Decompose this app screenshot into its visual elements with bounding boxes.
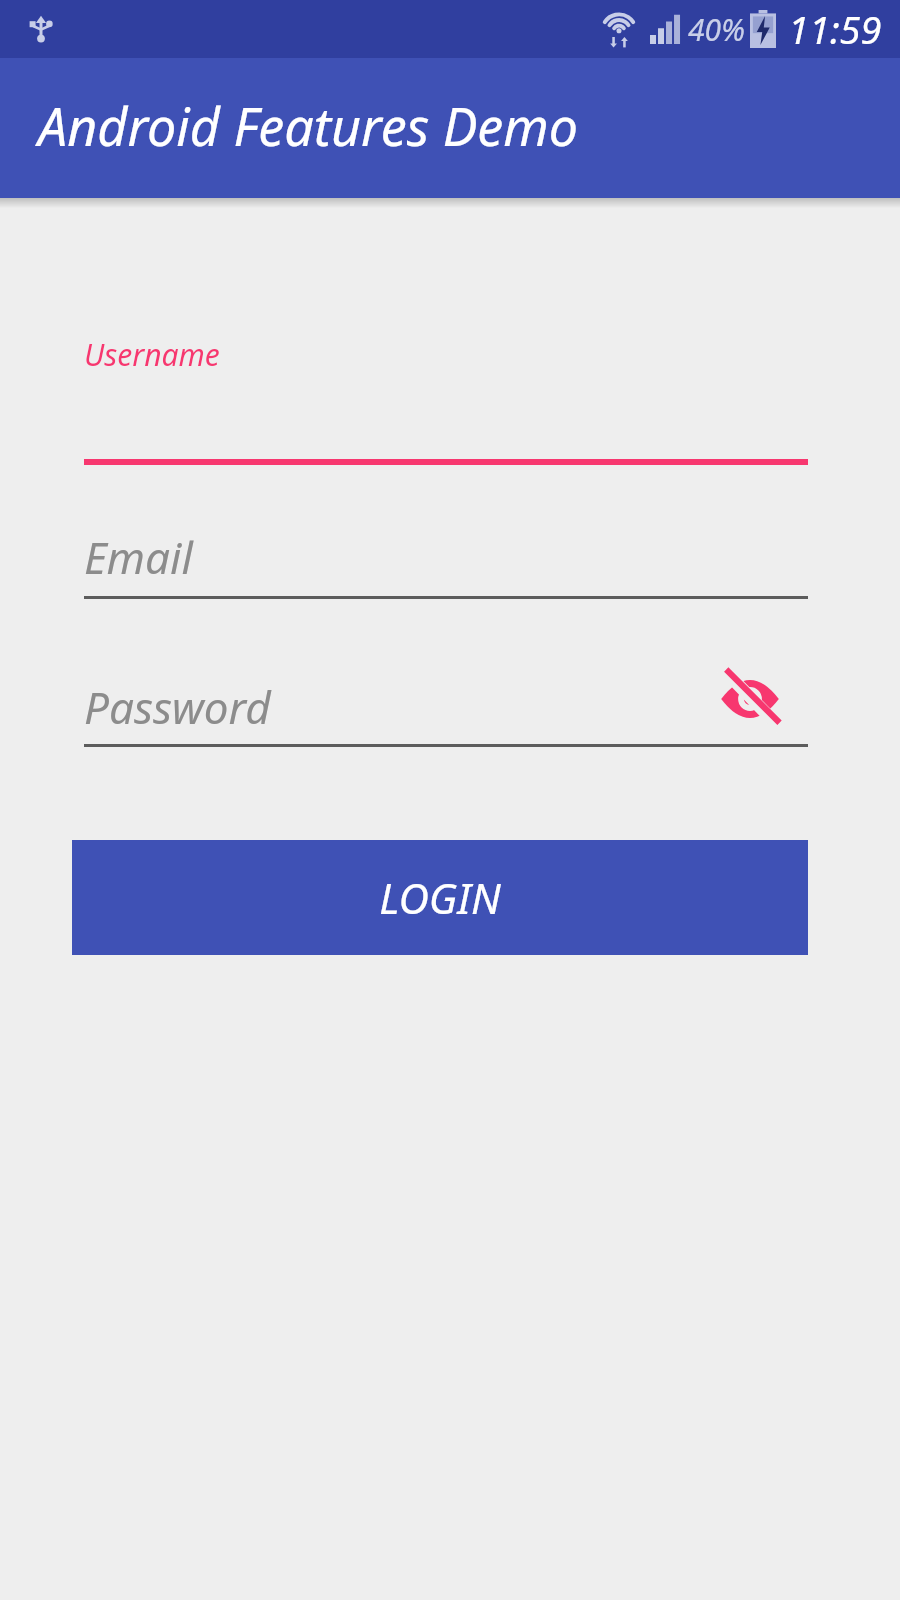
staticText: 40% [688, 9, 746, 50]
button[interactable]: LOGIN [72, 840, 808, 955]
staticText: Email [84, 527, 193, 587]
button[interactable]: Password [0, 653, 900, 803]
staticText: Android Features Demo [38, 90, 579, 161]
staticText: Username [84, 334, 220, 375]
staticText: LOGIN [379, 869, 501, 926]
staticText: Password [84, 677, 271, 737]
button[interactable]: Toggle password visibility [714, 663, 786, 735]
button[interactable]: Email [0, 505, 900, 655]
staticText: 11:59 [788, 3, 882, 55]
button[interactable]: Username [0, 325, 900, 465]
